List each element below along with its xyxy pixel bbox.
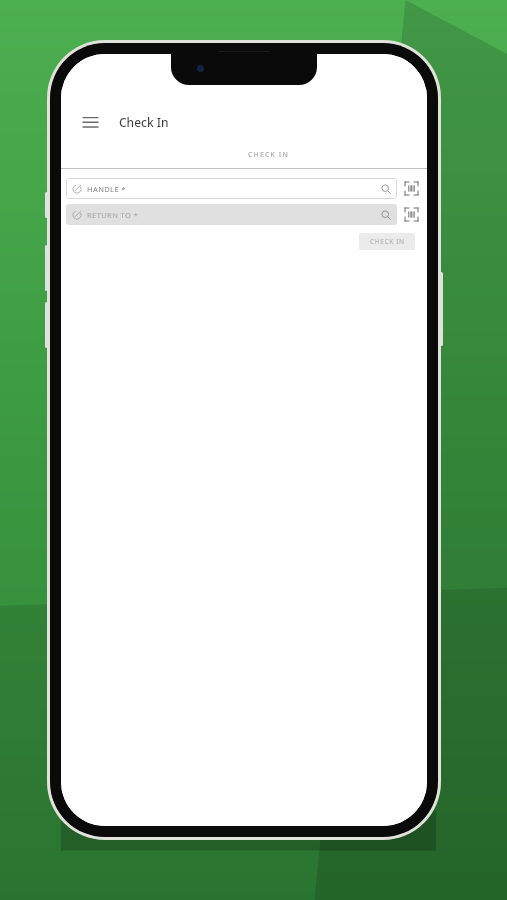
button[interactable]: CHECK IN (234, 145, 303, 165)
button[interactable]: Scan barcode for HANDLE * (402, 179, 421, 198)
staticText: CHECK IN (370, 237, 405, 246)
button[interactable]: CHECK IN (359, 233, 415, 250)
staticText: CHECK IN (248, 150, 289, 160)
staticText: RETURN TO * (87, 210, 139, 220)
button[interactable]: HANDLE * (66, 178, 397, 199)
button[interactable]: RETURN TO * (66, 204, 397, 225)
button[interactable]: Open navigation menu (73, 105, 107, 139)
button[interactable]: Scan barcode for RETURN TO * (402, 205, 421, 224)
staticText: HANDLE * (87, 184, 126, 194)
staticText: Check In (119, 114, 169, 130)
